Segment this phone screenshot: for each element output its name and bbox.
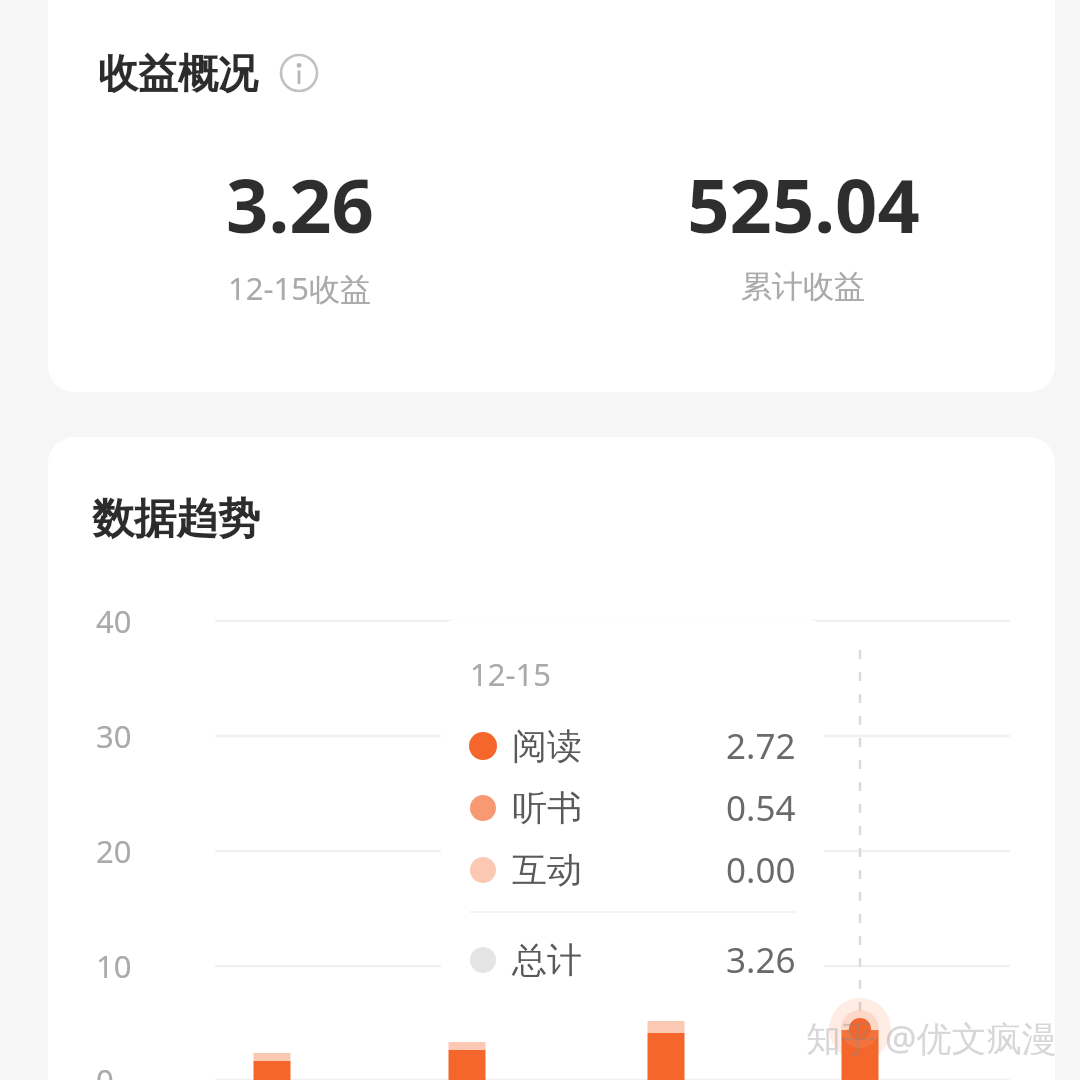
staticText: 12-15 (470, 653, 551, 695)
button[interactable]: 数据趋势 (92, 493, 260, 546)
staticText: 累计收益 (741, 267, 865, 306)
button[interactable]: 收益概况 (98, 48, 320, 98)
staticText: 40 (96, 600, 132, 642)
button[interactable]: 总计 (470, 929, 796, 991)
button[interactable]: 525.04 (551, 154, 1055, 306)
staticText: 0.54 (726, 784, 796, 832)
staticText: 听书 (512, 786, 582, 830)
staticText: 阅读 (512, 724, 582, 768)
button[interactable]: 听书 (470, 777, 796, 839)
staticText: 0.00 (726, 846, 796, 894)
button[interactable]: 阅读 (470, 715, 796, 777)
staticText: 互动 (512, 848, 582, 892)
button[interactable]: 说明 (278, 52, 320, 94)
staticText: 12-15收益 (228, 267, 371, 309)
staticText: 3.26 (226, 154, 374, 255)
staticText: 3.26 (726, 936, 796, 984)
button[interactable]: 互动 (470, 839, 796, 901)
staticText: 525.04 (687, 154, 920, 255)
staticText: 30 (96, 715, 132, 757)
staticText: 2.72 (726, 722, 796, 770)
staticText: 收益概况 (98, 48, 258, 98)
staticText: 总计 (512, 938, 582, 982)
staticText: 0 (96, 1059, 114, 1080)
staticText: 10 (96, 945, 132, 987)
staticText: 20 (96, 830, 132, 872)
button[interactable]: 3.26 (48, 154, 551, 309)
staticText: 知乎 @优文疯漫 (806, 1014, 1057, 1062)
